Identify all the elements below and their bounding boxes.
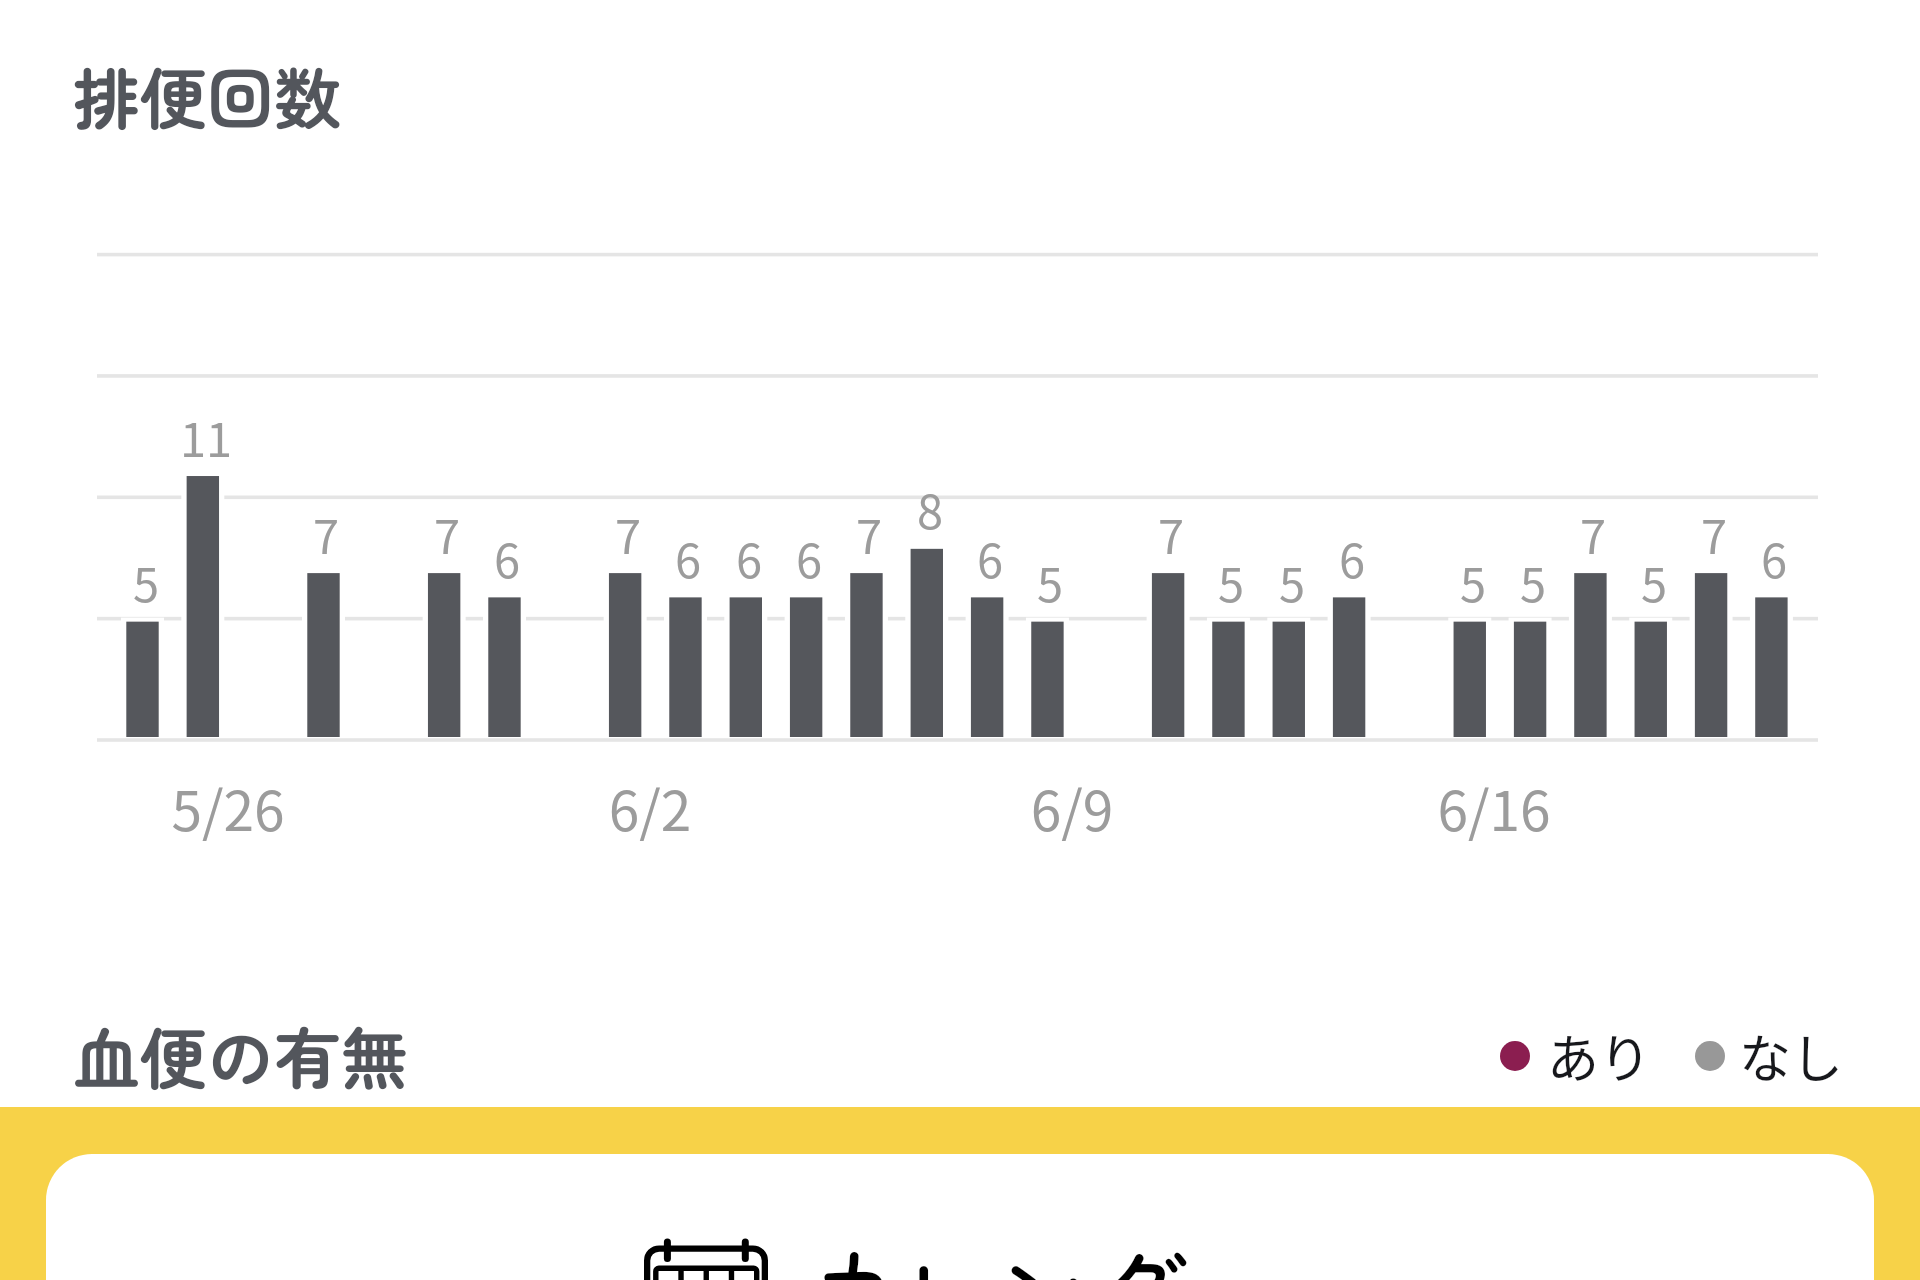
staticText: 7	[819, 499, 919, 567]
staticText: 7	[1121, 499, 1221, 567]
staticText: 7	[578, 499, 678, 567]
staticText: 排便回数	[73, 46, 341, 143]
staticText: 6	[940, 523, 1040, 591]
button[interactable]: Calendar	[46, 1154, 1874, 1280]
staticText: 5	[1604, 547, 1704, 615]
staticText: 8	[880, 474, 980, 542]
staticText: 5	[1423, 547, 1523, 615]
staticText: 7	[1664, 499, 1764, 567]
staticText: カレンダー	[808, 1218, 1279, 1280]
staticText: 6	[1302, 523, 1402, 591]
staticText: あり	[1547, 1018, 1652, 1093]
button[interactable]: あり	[1500, 1018, 1652, 1093]
staticText: 7	[276, 499, 376, 567]
staticText: 5	[1000, 547, 1100, 615]
staticText: 6	[1724, 523, 1824, 591]
staticText: 6	[759, 523, 859, 591]
staticText: 6/16	[1344, 767, 1644, 847]
staticText: 6/2	[500, 767, 800, 847]
staticText: 5	[1483, 547, 1583, 615]
staticText: なし	[1739, 1018, 1844, 1093]
staticText: 血便の有無	[73, 1006, 408, 1103]
staticText: 6	[457, 523, 557, 591]
staticText: 5	[1181, 547, 1281, 615]
button[interactable]: なし	[1695, 1018, 1844, 1093]
other: Calendar	[644, 1237, 770, 1280]
staticText: 5	[1242, 547, 1342, 615]
staticText: 6	[638, 523, 738, 591]
staticText: 7	[1543, 499, 1643, 567]
staticText: 6/9	[922, 767, 1222, 847]
staticText: 5/26	[78, 767, 378, 847]
staticText: 6	[699, 523, 799, 591]
staticText: 11	[156, 402, 256, 470]
staticText: 5	[96, 547, 196, 615]
staticText: 7	[397, 499, 497, 567]
